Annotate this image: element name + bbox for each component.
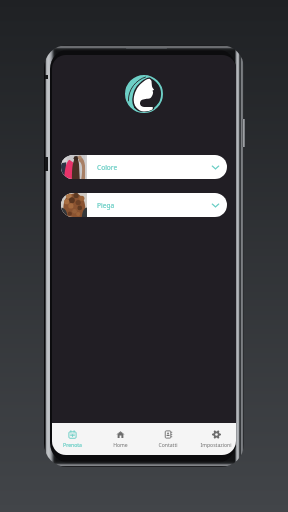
button[interactable]: Piega [61, 193, 227, 217]
staticText: Home [113, 442, 128, 449]
button[interactable]: Home [100, 423, 140, 455]
staticText: Piega [97, 201, 115, 210]
button[interactable]: Impostazioni [196, 423, 236, 455]
staticText: Colore [97, 163, 118, 172]
button[interactable]: Contatti [148, 423, 188, 455]
button[interactable]: Colore [61, 155, 227, 179]
button[interactable]: Prenota [52, 423, 92, 455]
staticText: Impostazioni [200, 442, 232, 449]
staticText: Prenota [63, 442, 82, 449]
staticText: Contatti [158, 442, 178, 449]
